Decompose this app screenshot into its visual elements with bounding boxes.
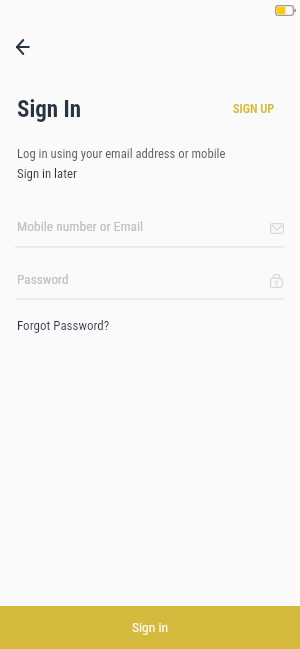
staticText: Password: [17, 272, 69, 288]
staticText: SIGN UP: [233, 102, 275, 116]
staticText: Sign In: [17, 96, 81, 123]
button[interactable]: Sign in later: [17, 166, 77, 181]
button[interactable]: Sign in: [0, 606, 300, 649]
staticText: Sign in: [132, 619, 169, 635]
button[interactable]: Forgot Password?: [17, 318, 110, 333]
staticText: Mobile number or Email: [17, 218, 144, 234]
staticText: Sign in later: [17, 166, 77, 181]
button[interactable]: Back: [4, 29, 40, 65]
staticText: Log in using your email address or mobil…: [17, 146, 226, 161]
button[interactable]: SIGN UP: [221, 98, 287, 120]
staticText: Forgot Password?: [17, 318, 110, 333]
